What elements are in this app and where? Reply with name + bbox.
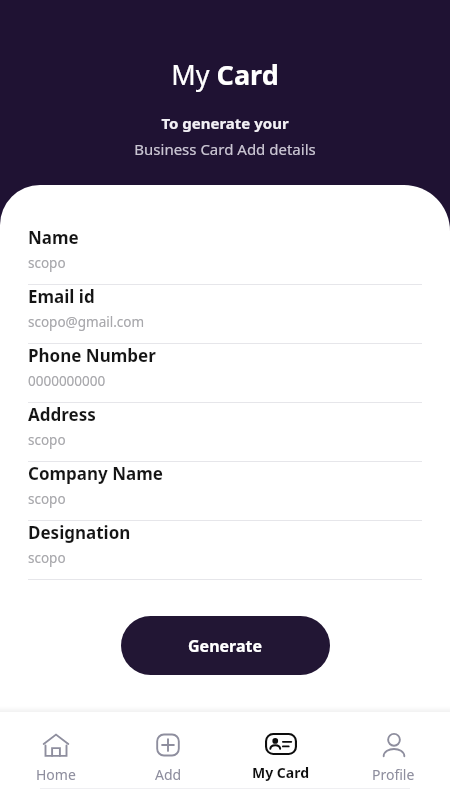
staticText: Email id [28, 285, 95, 308]
staticText: Address [28, 403, 96, 426]
staticText: Profile [372, 765, 415, 784]
other: My Card [265, 732, 297, 756]
button[interactable]: Profile [337, 712, 450, 800]
other: Add [154, 732, 182, 758]
staticText: My Card [171, 56, 279, 93]
staticText: 0000000000 [28, 372, 106, 390]
other: Home [41, 732, 71, 758]
staticText: scopo@gmail.com [28, 313, 145, 331]
button[interactable]: Add [112, 712, 224, 800]
button[interactable]: Designation [0, 521, 450, 580]
staticText: Phone Number [28, 344, 156, 367]
staticText: Business Card Add details [134, 139, 316, 159]
button[interactable]: Home [0, 712, 112, 800]
staticText: My Card [252, 763, 310, 782]
staticText: scopo [28, 431, 66, 449]
button[interactable]: Name [0, 226, 450, 285]
staticText: scopo [28, 490, 66, 508]
staticText: Name [28, 226, 79, 249]
button[interactable]: My Card [224, 712, 337, 800]
staticText: Add [155, 765, 182, 784]
staticText: Designation [28, 521, 131, 544]
button[interactable]: Address [0, 403, 450, 462]
staticText: scopo [28, 549, 66, 567]
button[interactable]: Generate [121, 616, 330, 675]
staticText: Home [36, 765, 76, 784]
button[interactable]: Company Name [0, 462, 450, 521]
staticText: scopo [28, 254, 66, 272]
button[interactable]: Email id [0, 285, 450, 344]
staticText: To generate your [161, 113, 289, 133]
other: Profile [380, 732, 408, 758]
staticText: Generate [188, 635, 263, 657]
staticText: Company Name [28, 462, 163, 485]
button[interactable]: Phone Number [0, 344, 450, 403]
